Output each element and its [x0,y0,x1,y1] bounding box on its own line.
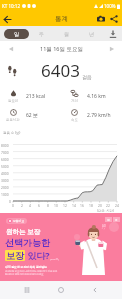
staticText: 24 [115,203,119,207]
staticText: 내게 필요한 보장만 쏙쏙 골라담는 [5,265,48,269]
staticText: 거리 [71,99,78,103]
staticText: 걸음 수 (보) [3,130,21,135]
button[interactable]: Save data [107,28,119,40]
button[interactable]: Info [105,217,112,222]
button[interactable]: Close ad [113,217,120,222]
button[interactable]: Back [88,283,102,297]
staticText: (feat.펫) [50,257,59,260]
staticText: ⓘ [107,218,110,222]
button[interactable]: 속도 [61,104,122,122]
staticText: 14 [72,203,76,207]
staticText: 4 [29,203,31,207]
staticText: 8000 [1,143,9,147]
staticText: 11월 16일 토요일 [40,45,83,53]
staticText: 8 [47,203,49,207]
staticText: 6 [38,203,40,207]
staticText: AD [102,224,106,228]
staticText: 16 [80,203,84,207]
staticText: 2 [21,203,23,207]
staticText: 213 kcal [26,93,46,100]
button[interactable]: 일 [4,29,29,39]
staticText: 원하는 보장 [6,227,41,236]
button[interactable]: 보험비교 [0,213,122,281]
button[interactable]: Previous day [5,43,16,54]
staticText: 4.16 km [87,93,106,100]
staticText: 6403 [41,59,80,82]
staticText: 있다? [25,249,50,261]
staticText: 보장 [6,250,24,261]
staticText: 1000 [1,192,9,196]
button[interactable]: 주 [29,29,54,39]
staticText: 속도 [71,118,78,122]
button[interactable]: Share [108,13,120,25]
button[interactable]: 거리 [61,85,122,103]
staticText: 보험비교 [13,219,25,223]
button[interactable]: 월 [54,29,79,39]
staticText: 100% [104,3,116,9]
button[interactable]: Back [0,12,14,26]
staticText: 62 분 [26,112,39,119]
staticText: KT 10:12 [2,3,20,9]
staticText: 년 [89,31,94,37]
staticText: 7000 [1,150,9,154]
staticText: 걸음 [82,74,92,80]
staticText: 일 [14,31,19,37]
staticText: 10 [54,203,58,207]
staticText: 주 [39,31,44,37]
staticText: 2.79 km/h [87,112,111,119]
staticText: 건강보험 비교하고 나에게 맞는 보험 찾기 지금 바로 [5,270,58,273]
button[interactable]: Recent apps [20,283,34,297]
staticText: 통계 [55,15,68,23]
staticText: 월 [64,31,69,37]
staticText: ✕ [115,218,118,221]
staticText: 20 [98,203,102,207]
staticText: 4000 [1,171,9,175]
button[interactable]: 칼로리 [0,85,61,103]
staticText: 6000 [1,157,9,161]
staticText: 3000 [1,178,9,182]
staticText: 2000 [1,185,9,189]
staticText: 0 [9,199,11,203]
button[interactable]: 운동시간 [0,104,61,122]
staticText: 0 [12,203,14,207]
button[interactable]: Camera [95,13,107,25]
staticText: 22 [106,203,110,207]
staticText: 5000 [1,164,9,168]
staticText: 18 [89,203,93,207]
staticText: 선택가능한 [5,237,50,248]
staticText: (단위: 시간) [97,208,114,213]
staticText: 칼로리 [8,99,19,103]
button[interactable]: 년 [79,29,104,39]
button[interactable]: Next day [106,43,117,54]
staticText: 확인하고 혜택까지 한번에 받아가세요 [5,273,44,276]
staticText: 12 [63,203,67,207]
button[interactable]: Home [54,283,68,297]
staticText: 운동시간 [6,118,20,122]
